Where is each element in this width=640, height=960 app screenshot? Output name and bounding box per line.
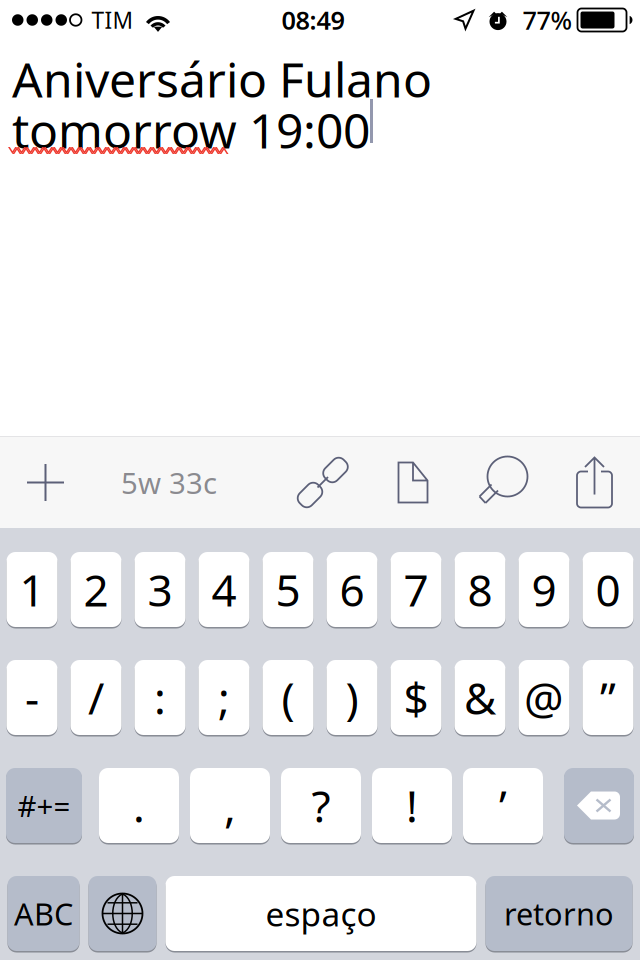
button[interactable]: Search <box>458 437 549 528</box>
staticText: Aniversário Fulano <box>12 47 432 111</box>
staticText: 5w 33c <box>121 463 217 502</box>
button[interactable]: Share <box>549 437 640 528</box>
button[interactable]: 7 <box>390 550 441 628</box>
staticText: 6 <box>339 560 364 619</box>
staticText: tomorrow 19:00 <box>12 98 370 162</box>
staticText: ? <box>311 776 330 835</box>
button[interactable]: 3 <box>134 550 185 628</box>
button[interactable]: ’ <box>463 766 543 844</box>
staticText: 08:49 <box>281 3 344 37</box>
button[interactable]: : <box>134 658 185 736</box>
button[interactable]: 6 <box>326 550 377 628</box>
button[interactable]: retorno <box>485 874 632 952</box>
button[interactable]: 9 <box>518 550 569 628</box>
staticText: 8 <box>467 560 492 619</box>
staticText: @ <box>524 668 564 727</box>
button[interactable]: 1 <box>6 550 57 628</box>
button[interactable]: 2 <box>70 550 121 628</box>
button[interactable]: , <box>190 766 270 844</box>
staticText: $ <box>403 668 428 727</box>
button[interactable]: 8 <box>454 550 505 628</box>
staticText: ’ <box>499 776 507 835</box>
staticText: , <box>224 776 236 835</box>
staticText: 77% <box>522 3 572 37</box>
staticText: retorno <box>504 893 614 934</box>
staticText: 5 <box>275 560 300 619</box>
button[interactable]: & <box>454 658 505 736</box>
staticText: 7 <box>403 560 428 619</box>
button[interactable]: ” <box>582 658 633 736</box>
button[interactable]: @ <box>518 658 569 736</box>
staticText: 9 <box>531 560 556 619</box>
button[interactable]: ! <box>372 766 452 844</box>
staticText: ) <box>345 668 358 727</box>
staticText: ; <box>218 668 230 727</box>
staticText: #+= <box>17 786 70 825</box>
button[interactable]: - <box>6 658 57 736</box>
button[interactable]: New draft <box>0 437 91 528</box>
staticText: ” <box>600 668 616 727</box>
button[interactable]: espaço <box>165 874 476 952</box>
button[interactable]: ) <box>326 658 377 736</box>
button[interactable]: ABC <box>7 874 79 952</box>
staticText: 1 <box>19 560 44 619</box>
staticText: 3 <box>147 560 172 619</box>
button[interactable]: ? <box>281 766 361 844</box>
button[interactable]: . <box>99 766 179 844</box>
button[interactable]: ; <box>198 658 249 736</box>
staticText: ! <box>406 776 418 835</box>
staticText: espaço <box>265 891 376 936</box>
button[interactable]: 0 <box>582 550 633 628</box>
button[interactable]: / <box>70 658 121 736</box>
staticText: 2 <box>83 560 108 619</box>
staticText: ABC <box>14 893 73 934</box>
button[interactable]: Next keyboard <box>88 874 156 952</box>
staticText: . <box>133 776 145 835</box>
staticText: / <box>88 668 104 727</box>
staticText: 0 <box>595 560 620 619</box>
staticText: : <box>154 668 166 727</box>
staticText: 4 <box>211 560 236 619</box>
button[interactable]: $ <box>390 658 441 736</box>
staticText: - <box>25 668 39 727</box>
staticText: TIM <box>91 5 133 35</box>
button[interactable]: #+= <box>6 766 82 844</box>
button[interactable]: Delete <box>564 766 634 844</box>
button[interactable]: 4 <box>198 550 249 628</box>
button[interactable]: Link <box>278 437 368 528</box>
button[interactable]: ( <box>262 658 313 736</box>
button[interactable]: Documents <box>368 437 458 528</box>
button[interactable]: 5 <box>262 550 313 628</box>
staticText: & <box>464 668 496 727</box>
staticText: ( <box>281 668 294 727</box>
